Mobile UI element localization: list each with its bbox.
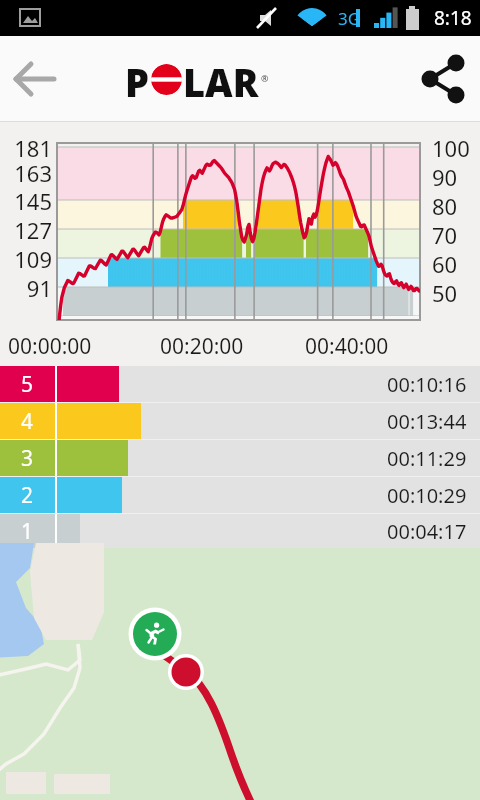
button[interactable]: 3 [0, 440, 480, 476]
staticText: ® [261, 72, 269, 84]
staticText: 1 [21, 517, 34, 546]
button[interactable]: 4 [0, 403, 480, 439]
staticText: 91 [0, 273, 52, 303]
staticText: 163 [0, 158, 52, 188]
staticText: 00:11:29 [387, 445, 467, 472]
button[interactable]: 5 [0, 366, 480, 402]
staticText: 00:13:44 [387, 408, 467, 435]
staticText: 90 [432, 162, 480, 192]
staticText: 3G [338, 7, 361, 30]
staticText: 145 [0, 186, 52, 216]
staticText: 50 [432, 278, 480, 308]
staticText: 60 [432, 249, 480, 279]
staticText: P [125, 56, 150, 102]
staticText: 80 [432, 191, 480, 221]
staticText: 127 [0, 215, 52, 245]
button[interactable]: 2 [0, 477, 480, 513]
staticText: 8:18 [434, 5, 472, 31]
button[interactable]: Back [0, 43, 72, 115]
staticText: 181 [0, 133, 52, 163]
staticText: 70 [432, 220, 480, 250]
staticText: 2 [21, 481, 34, 510]
staticText: 00:04:17 [387, 518, 467, 545]
staticText: 00:20:00 [160, 332, 244, 361]
staticText: 00:10:16 [387, 371, 467, 398]
staticText: 109 [0, 244, 52, 274]
staticText: LAR [183, 56, 259, 102]
button[interactable]: Share [408, 43, 480, 115]
button[interactable]: 1 [0, 514, 480, 548]
staticText: 00:10:29 [387, 482, 467, 509]
staticText: 5 [21, 370, 34, 399]
staticText: 00:40:00 [305, 332, 389, 361]
staticText: 4 [21, 407, 34, 436]
staticText: 3 [21, 444, 34, 473]
staticText: 100 [432, 133, 480, 163]
staticText: 00:00:00 [8, 332, 92, 361]
